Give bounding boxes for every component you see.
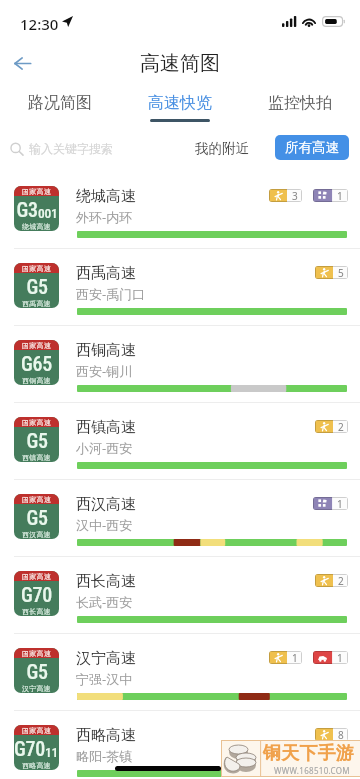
staticText: 绕城高速 (22, 222, 51, 231)
staticText: 汉中-西安 (76, 516, 133, 534)
staticText: 高速快览 (148, 93, 212, 113)
button[interactable]: 1 (313, 651, 348, 664)
staticText: G5 (26, 506, 48, 529)
staticText: 12:30 (20, 14, 59, 34)
staticText: G70 (14, 737, 45, 760)
staticText: 西镇高速 (22, 453, 51, 462)
staticText: 西长高速 (22, 607, 51, 616)
button[interactable]: 国家高速 (0, 403, 360, 480)
staticText: 略阳-茶镇 (76, 747, 133, 765)
staticText: 铜天下手游 (263, 742, 354, 765)
staticText: 国家高速 (22, 418, 52, 427)
staticText: 路况简图 (28, 93, 92, 113)
staticText: 8 (338, 728, 344, 741)
button[interactable]: 国家高速 (0, 711, 360, 779)
button[interactable]: 高速快览 (120, 86, 240, 124)
staticText: G70 (21, 583, 52, 606)
staticText: 1 (337, 497, 343, 510)
button[interactable]: 2 (315, 574, 348, 587)
staticText: 5 (338, 266, 344, 279)
staticText: 西安-禹门口 (76, 285, 146, 303)
staticText: 2 (338, 420, 344, 433)
staticText: G5 (26, 275, 48, 298)
staticText: 国家高速 (22, 187, 52, 196)
staticText: 1 (337, 189, 343, 202)
button[interactable]: 国家高速 (0, 634, 360, 711)
button[interactable]: 输入关键字搜索 (10, 141, 113, 156)
button[interactable]: 所有高速 (275, 135, 349, 160)
staticText: 输入关键字搜索 (29, 141, 113, 156)
staticText: 11 (45, 744, 59, 760)
button[interactable]: 1 (313, 497, 348, 510)
staticText: 国家高速 (22, 341, 52, 350)
staticText: WWW.168510.COM (274, 765, 350, 776)
staticText: 1 (292, 651, 298, 664)
staticText: 001 (38, 205, 58, 221)
button[interactable]: 我的附近 (193, 135, 251, 162)
staticText: 西汉高速 (22, 530, 51, 539)
staticText: 西铜高速 (76, 341, 136, 360)
button[interactable]: 8 (315, 728, 348, 741)
button[interactable]: 3 (269, 189, 302, 202)
staticText: 外环-内环 (76, 208, 133, 226)
staticText: G5 (26, 660, 48, 683)
staticText: 2 (338, 574, 344, 587)
staticText: 3 (292, 189, 298, 202)
button[interactable]: 国家高速 (0, 326, 360, 403)
staticText: 汉宁高速 (22, 684, 51, 693)
staticText: G5 (26, 429, 48, 452)
staticText: 西禹高速 (22, 299, 51, 308)
staticText: 西禹高速 (76, 264, 136, 283)
staticText: 西略高速 (22, 761, 51, 770)
staticText: 西长高速 (76, 572, 136, 591)
button[interactable]: 1 (313, 189, 348, 202)
button[interactable]: 路况简图 (0, 86, 120, 124)
staticText: 西略高速 (76, 726, 136, 745)
staticText: 小河-西安 (76, 439, 133, 457)
staticText: 汉宁高速 (76, 649, 136, 668)
staticText: 国家高速 (22, 495, 52, 504)
staticText: 国家高速 (22, 726, 52, 735)
staticText: 宁强-汉中 (76, 670, 133, 688)
staticText: 西镇高速 (76, 418, 136, 437)
button[interactable]: 1 (269, 651, 302, 664)
button[interactable]: 国家高速 (0, 249, 360, 326)
staticText: 我的附近 (195, 140, 249, 157)
staticText: 国家高速 (22, 572, 52, 581)
staticText: 西铜高速 (22, 376, 51, 385)
button[interactable]: 2 (315, 420, 348, 433)
staticText: 1 (337, 651, 343, 664)
staticText: 长武-西安 (76, 593, 133, 611)
button[interactable]: 监控快拍 (240, 86, 360, 124)
staticText: G65 (21, 352, 52, 375)
staticText: 西安-铜川 (76, 362, 133, 380)
staticText: 国家高速 (22, 264, 52, 273)
staticText: 所有高速 (285, 139, 339, 156)
staticText: 绕城高速 (76, 187, 136, 206)
button[interactable]: 国家高速 (0, 172, 360, 249)
button[interactable]: 国家高速 (0, 557, 360, 634)
button[interactable]: Back (6, 47, 38, 79)
button[interactable]: 5 (315, 266, 348, 279)
staticText: 国家高速 (22, 649, 52, 658)
button[interactable]: 国家高速 (0, 480, 360, 557)
staticText: 高速简图 (140, 51, 220, 76)
staticText: G3 (16, 198, 38, 221)
staticText: 西汉高速 (76, 495, 136, 514)
staticText: 监控快拍 (268, 93, 332, 113)
